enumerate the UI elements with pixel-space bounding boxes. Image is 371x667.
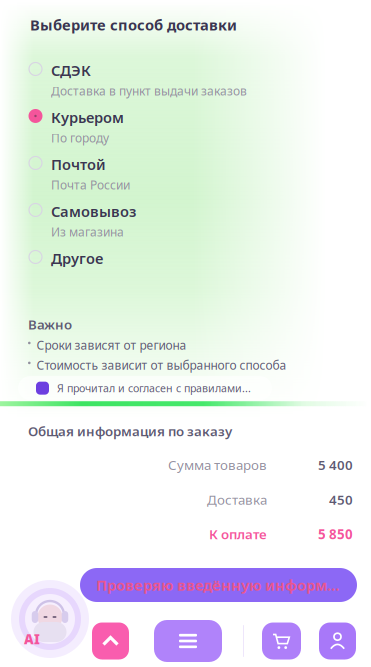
staticText: AI bbox=[24, 630, 40, 648]
staticText: Выберите способ доставки bbox=[30, 15, 237, 34]
staticText: Сроки зависят от региона bbox=[37, 337, 187, 353]
staticText: Доставка bbox=[207, 491, 267, 508]
button[interactable]: Profile bbox=[319, 622, 356, 659]
button[interactable]: Самовывоз bbox=[28, 201, 353, 248]
button[interactable]: Cart bbox=[262, 622, 301, 659]
staticText: Почта России bbox=[51, 177, 130, 193]
staticText: Сумма товаров bbox=[168, 456, 267, 474]
button[interactable]: Другое bbox=[28, 248, 353, 295]
staticText: Доставка в пункт выдачи заказов bbox=[51, 83, 247, 99]
staticText: Проверяю введённую информацию... bbox=[96, 575, 341, 595]
staticText: Общая информация по заказу bbox=[28, 422, 232, 440]
staticText: Почтой bbox=[51, 154, 106, 174]
staticText: Курьером bbox=[51, 107, 124, 127]
staticText: Другое bbox=[51, 248, 103, 268]
button[interactable]: СДЭК bbox=[28, 60, 353, 107]
staticText: СДЭК bbox=[51, 60, 91, 80]
button[interactable]: Почтой bbox=[28, 154, 353, 201]
staticText: Стоимость зависит от выбранного способа bbox=[37, 357, 287, 373]
staticText: Я прочитал и согласен с правилами... bbox=[57, 381, 251, 395]
button[interactable]: Scroll up bbox=[92, 622, 129, 659]
button[interactable]: Menu bbox=[154, 620, 222, 662]
staticText: Важно bbox=[28, 315, 72, 333]
staticText: Из магазина bbox=[51, 224, 124, 240]
staticText: К оплате bbox=[209, 525, 267, 543]
staticText: 450 bbox=[329, 491, 353, 508]
staticText: 5 400 bbox=[318, 456, 353, 474]
staticText: По городу bbox=[51, 130, 109, 146]
button[interactable]: Я прочитал и согласен с правилами... bbox=[18, 376, 272, 400]
staticText: Самовывоз bbox=[51, 201, 136, 221]
button[interactable]: Курьером bbox=[28, 107, 353, 154]
staticText: 5 850 bbox=[318, 525, 353, 543]
